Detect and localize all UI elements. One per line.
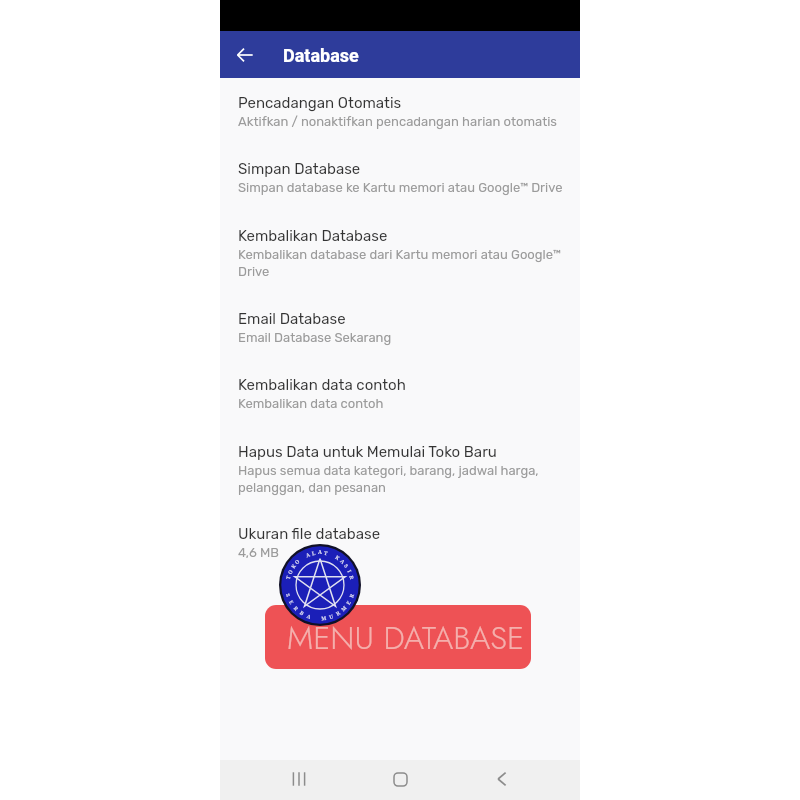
button[interactable]: Recent apps <box>281 761 317 797</box>
button[interactable]: Back <box>228 38 262 72</box>
button[interactable]: Kembalikan data contoh <box>220 361 580 428</box>
staticText: Hapus semua data kategori, barang, jadwa… <box>238 463 578 495</box>
staticText: Kembalikan data contoh <box>238 396 384 411</box>
staticText: Simpan database ke Kartu memori atau Goo… <box>238 180 563 195</box>
staticText: Kembalikan data contoh <box>238 376 406 394</box>
button[interactable]: Hapus Data untuk Memulai Toko Baru <box>220 428 580 510</box>
button[interactable]: Simpan Database <box>220 145 580 212</box>
button[interactable]: Pencadangan Otomatis <box>220 79 580 145</box>
staticText: Email Database <box>238 310 346 328</box>
staticText: Ukuran file database <box>238 525 381 543</box>
button[interactable]: Email Database <box>220 295 580 361</box>
button[interactable]: Back <box>484 761 520 797</box>
staticText: Kembalikan Database <box>238 227 388 245</box>
button[interactable]: Kembalikan Database <box>220 212 580 295</box>
staticText: Database <box>283 45 359 66</box>
staticText: MENU DATABASE <box>287 615 525 661</box>
staticText: Hapus Data untuk Memulai Toko Baru <box>238 443 497 461</box>
staticText: Email Database Sekarang <box>238 330 392 345</box>
staticText: Pencadangan Otomatis <box>238 94 402 112</box>
staticText: 4,6 MB <box>238 545 279 560</box>
staticText: Kembalikan database dari Kartu memori at… <box>238 247 578 279</box>
button[interactable]: Ukuran file database <box>220 510 580 576</box>
button[interactable]: Home <box>382 761 418 797</box>
staticText: Aktifkan / nonaktifkan pencadangan haria… <box>238 114 557 129</box>
staticText: Simpan Database <box>238 160 361 178</box>
